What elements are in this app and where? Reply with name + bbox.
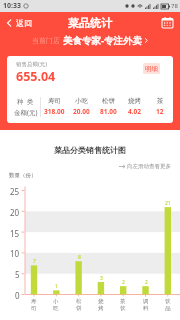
staticText: 菜品分类销售统计图 [0,145,180,155]
staticText: 15 [10,228,20,239]
staticText: 当前门店 [32,36,60,45]
staticText: 司 [31,305,37,312]
staticText: 21 [165,200,171,207]
staticText: 烤 [98,305,104,312]
staticText: 数量（份） [9,172,37,179]
staticText: 12 [156,107,164,116]
staticText: 4.02 [128,107,141,116]
staticText: 吃 [53,305,59,312]
staticText: 10 [10,248,20,259]
staticText: 20 [10,207,20,218]
staticText: 2 [145,279,148,286]
staticText: 饼 [76,305,82,312]
staticText: 8 [78,254,81,261]
staticText: 5 [15,269,20,280]
button[interactable]: 当前门店 [0,34,180,47]
staticText: 明细 [145,65,158,73]
button[interactable]: Calendar [155,12,180,33]
staticText: 饮 [120,305,126,312]
staticText: 美食专家-专注外卖 [63,34,143,47]
staticText: 25 [10,186,20,197]
staticText: 655.04 [16,68,56,85]
button[interactable]: 明细 [143,63,160,74]
staticText: 销售总额(元) [16,60,47,68]
staticText: 20.00 [73,107,90,116]
staticText: 318.00 [44,107,65,116]
staticText: 0 [15,290,20,301]
staticText: 松饼 [102,97,115,105]
staticText: 78 [171,2,178,10]
staticText: 10:33 [3,1,21,11]
staticText: 料 [143,305,149,312]
staticText: 种 类 [17,97,35,106]
staticText: 向左滑动查看更多 [127,163,171,170]
staticText: 金额(元) [14,108,38,117]
staticText: 小吃 [75,97,88,105]
staticText: 松 [76,298,82,305]
staticText: 3 [100,275,103,282]
staticText: 7 [33,258,36,265]
staticText: 饮 [165,298,171,305]
staticText: 81.00 [100,107,117,116]
staticText: 菜品统计 [68,16,112,30]
staticText: 2 [122,279,125,286]
staticText: 烧 [98,298,104,305]
staticText: 茶 [157,97,164,105]
button[interactable]: 返回 [0,12,38,33]
staticText: 小 [53,298,59,305]
staticText: 返回 [16,18,32,28]
staticText: 品 [165,305,171,312]
staticText: 1 [55,283,58,290]
staticText: 茶 [120,298,126,305]
staticText: 调 [143,298,149,305]
staticText: 寿司 [48,97,61,105]
staticText: 烧烤 [128,97,141,105]
staticText: 寿 [31,298,37,305]
